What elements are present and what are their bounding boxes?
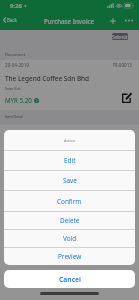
staticText: Confirm xyxy=(57,197,82,206)
staticText: Sean Koh xyxy=(5,86,21,91)
staticText: 9:26 xyxy=(10,2,22,10)
button[interactable]: Add xyxy=(106,14,119,27)
button[interactable]: Submit xyxy=(112,33,128,40)
staticText: 20-04-2019 xyxy=(5,62,29,68)
button[interactable]: Delete xyxy=(4,212,135,229)
staticText: Delete xyxy=(60,216,80,225)
staticText: Save xyxy=(63,176,77,185)
button[interactable]: Preview xyxy=(4,248,135,265)
staticText: Purchase Invoice xyxy=(44,17,95,25)
button[interactable]: Confirm xyxy=(4,191,135,211)
staticText: Action xyxy=(64,138,76,143)
staticText: Preview xyxy=(58,252,82,261)
staticText: Cancel xyxy=(59,275,81,284)
staticText: PI-00013 xyxy=(113,62,132,68)
staticText: The Legend Coffee Sdn Bhd xyxy=(5,74,90,83)
button[interactable]: Save xyxy=(4,171,135,190)
button[interactable]: Void xyxy=(4,230,135,247)
staticText: Edit xyxy=(64,156,76,165)
staticText: Item Detail xyxy=(5,114,24,119)
button[interactable]: More options xyxy=(122,14,135,27)
button[interactable]: Edit xyxy=(122,93,132,103)
button[interactable]: Cancel xyxy=(4,270,135,288)
staticText: Back xyxy=(7,17,17,23)
staticText: MYR 5.20 xyxy=(5,96,32,104)
button[interactable]: 20-04-2019 xyxy=(0,60,139,110)
staticText: Document xyxy=(5,52,26,58)
button[interactable]: Edit xyxy=(4,151,135,170)
button[interactable]: Back xyxy=(1,13,20,26)
staticText: Void xyxy=(63,234,77,243)
staticText: Submit xyxy=(112,34,128,40)
